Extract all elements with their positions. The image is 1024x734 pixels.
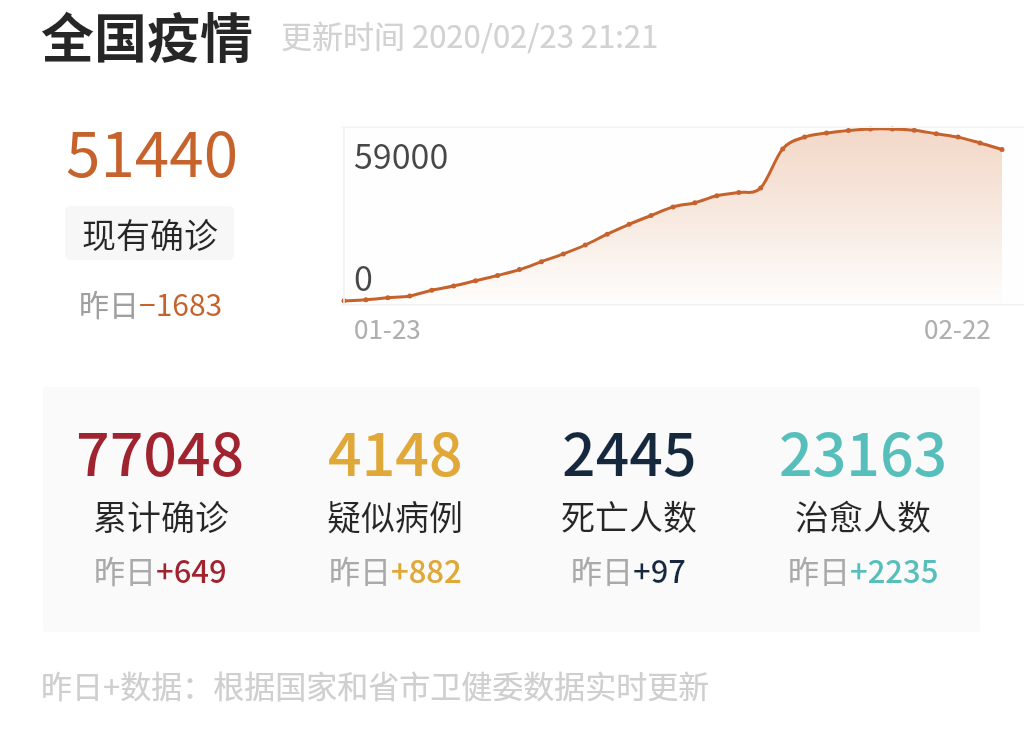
staticText: 01-23	[354, 309, 421, 347]
staticText: 0	[354, 252, 373, 301]
staticText: 昨日+2235	[788, 547, 939, 592]
staticText: 2445	[562, 408, 697, 493]
staticText: 更新时间 2020/02/23 21:21	[281, 12, 659, 57]
staticText: 累计确诊	[93, 491, 229, 540]
staticText: 昨日−1683	[79, 281, 223, 324]
button[interactable]: 77048	[43, 387, 278, 632]
staticText: 治愈人数	[795, 491, 931, 540]
staticText: 77048	[76, 408, 245, 493]
staticText: 51440	[66, 105, 239, 195]
staticText: 02-22	[924, 309, 991, 347]
staticText: 4148	[328, 408, 463, 493]
button[interactable]: 23163	[746, 387, 980, 632]
staticText: 昨日+882	[329, 547, 462, 592]
staticText: 现有确诊	[82, 209, 218, 258]
button[interactable]: 2445	[512, 387, 746, 632]
other: 疫情趋势图 Epidemic trend chart	[341, 124, 1024, 306]
staticText: 昨日+649	[94, 547, 227, 592]
button[interactable]: 现有确诊	[65, 206, 234, 260]
staticText: 昨日+97	[571, 547, 687, 592]
staticText: 59000	[354, 130, 449, 179]
staticText: 全国疫情	[41, 0, 253, 74]
staticText: 疑似病例	[327, 491, 463, 540]
staticText: 昨日+数据：根据国家和省市卫健委数据实时更新	[41, 662, 710, 707]
staticText: 死亡人数	[561, 491, 697, 540]
staticText: 23163	[779, 408, 948, 493]
button[interactable]: 4148	[278, 387, 512, 632]
